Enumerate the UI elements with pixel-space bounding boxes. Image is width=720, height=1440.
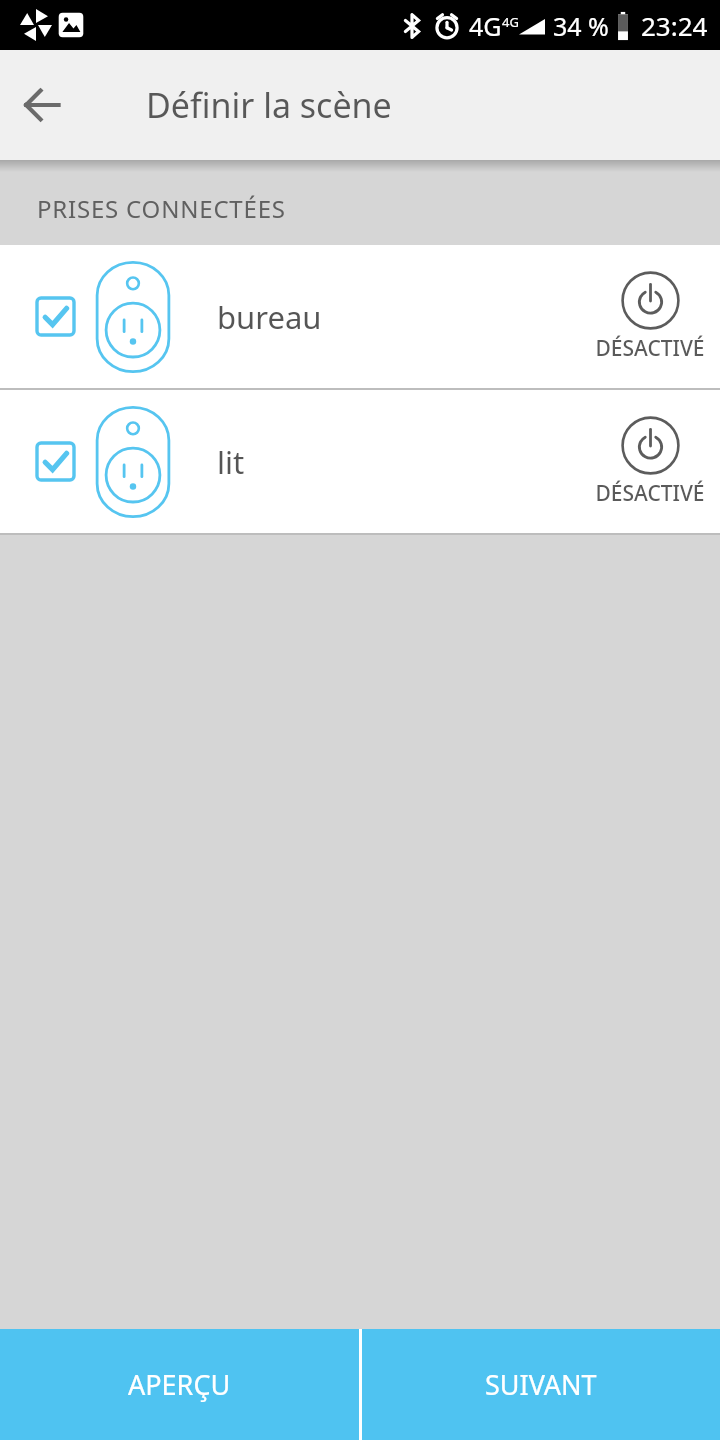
button[interactable]: APERÇU (0, 1329, 359, 1440)
button[interactable]: Back (0, 50, 84, 160)
staticText: 4G (502, 13, 519, 31)
staticText: DÉSACTIVÉ (595, 334, 705, 363)
staticText: APERÇU (128, 1366, 231, 1403)
staticText: lit (217, 441, 245, 483)
staticText: Définir la scène (146, 82, 392, 128)
button[interactable]: DÉSACTIVÉ (590, 271, 710, 363)
button[interactable]: SUIVANT (362, 1329, 720, 1440)
staticText: 34 % (553, 9, 609, 43)
button[interactable]: DÉSACTIVÉ (590, 416, 710, 508)
staticText: PRISES CONNECTÉES (37, 192, 286, 225)
staticText: 4G (469, 9, 502, 43)
staticText: 23:24 (641, 8, 708, 43)
button[interactable]: Select bureau (0, 245, 720, 388)
button[interactable]: Select lit (37, 443, 74, 480)
staticText: DÉSACTIVÉ (595, 479, 705, 508)
button[interactable]: Select bureau (37, 298, 74, 335)
button[interactable]: Select lit (0, 390, 720, 533)
staticText: SUIVANT (485, 1366, 597, 1403)
staticText: bureau (217, 296, 322, 338)
